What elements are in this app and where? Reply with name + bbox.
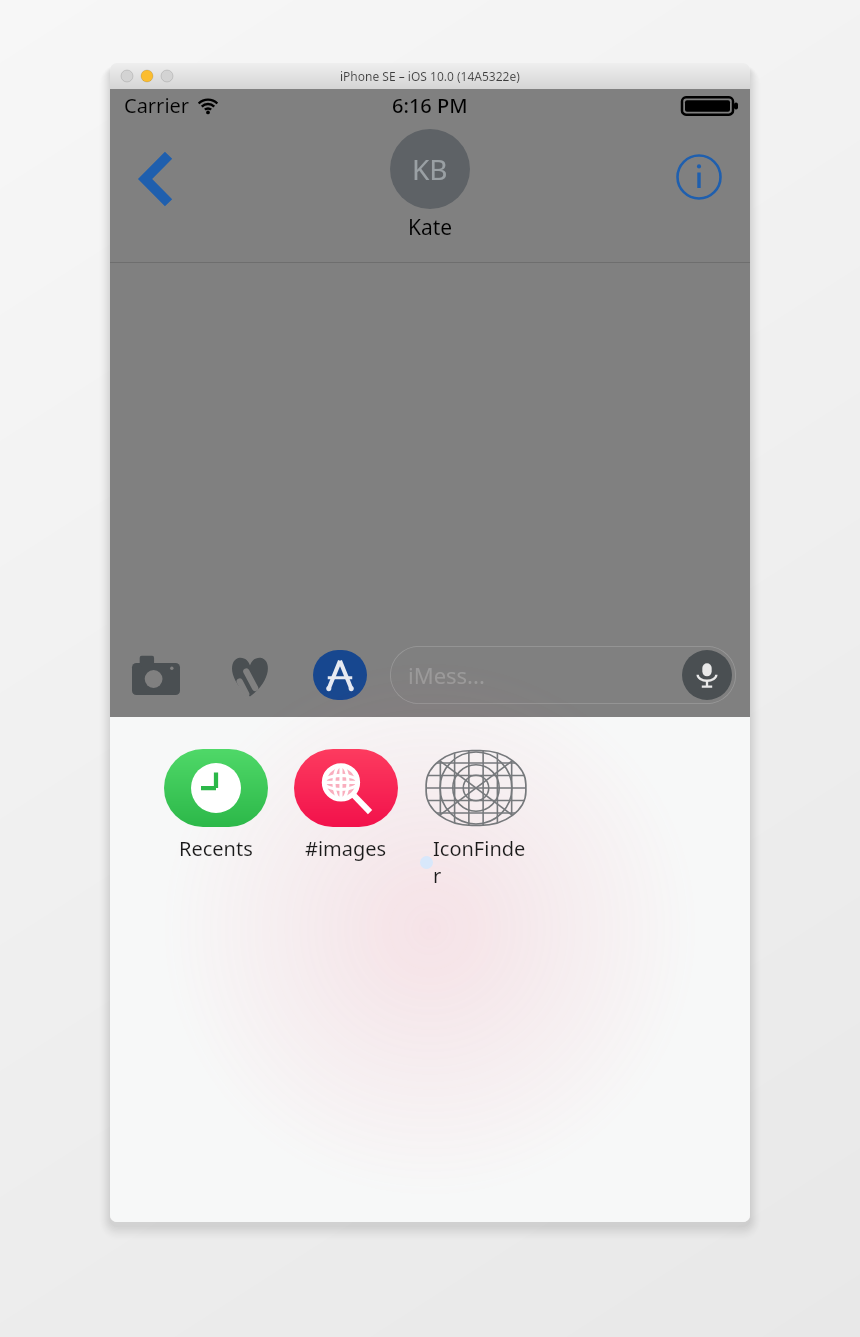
staticText: #images <box>305 835 387 862</box>
staticText: 6:16 PM <box>392 92 468 119</box>
button[interactable]: Digital Touch <box>218 643 282 707</box>
staticText: iMess... <box>408 660 485 690</box>
button[interactable]: Recents <box>160 747 272 862</box>
button[interactable]: Details <box>670 148 728 206</box>
button[interactable]: Dictate <box>682 650 732 700</box>
staticText: IconFinder <box>433 835 532 889</box>
button[interactable]: Back <box>126 146 188 212</box>
button[interactable]: iMessage Apps <box>308 643 372 707</box>
staticText: Kate <box>408 213 453 242</box>
button[interactable]: Camera <box>124 643 188 707</box>
button[interactable]: IconFinder <box>420 747 532 889</box>
button[interactable]: KB <box>390 129 470 242</box>
button[interactable]: iMess... <box>390 646 736 704</box>
staticText: Carrier <box>124 92 190 119</box>
staticText: Recents <box>179 835 253 862</box>
staticText: iPhone SE – iOS 10.0 (14A5322e) <box>340 68 520 84</box>
staticText: KB <box>412 150 448 188</box>
button[interactable]: #images <box>290 747 402 862</box>
